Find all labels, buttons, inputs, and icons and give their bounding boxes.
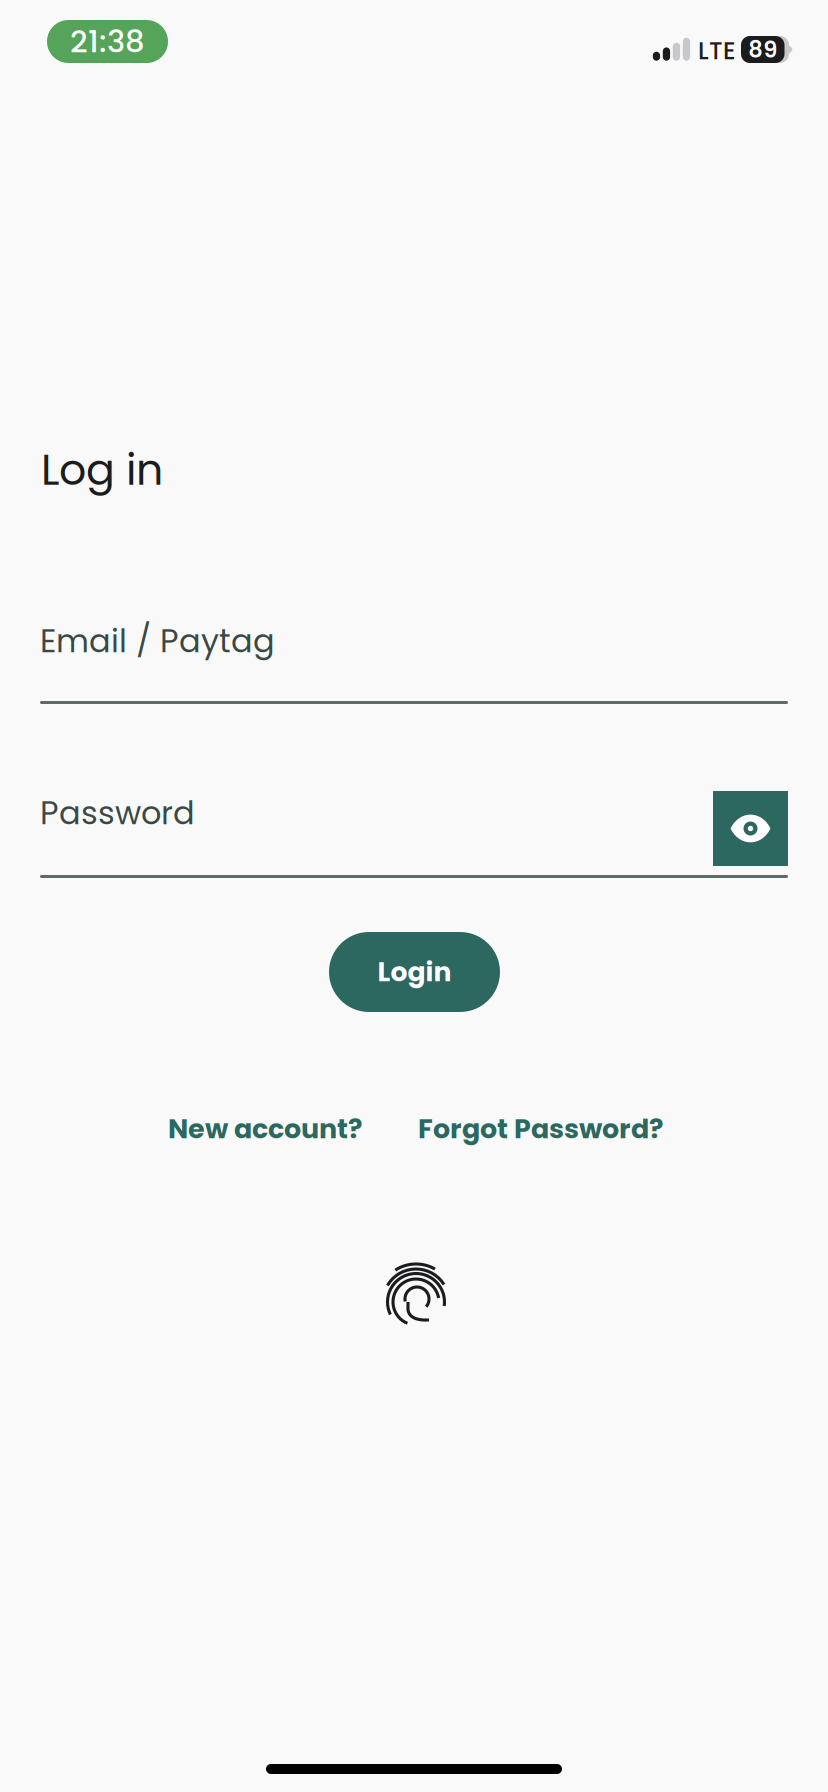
staticText: Login: [377, 953, 451, 991]
staticText: Password: [40, 791, 195, 835]
staticText: 89: [748, 34, 777, 65]
staticText: 21:38: [70, 20, 145, 63]
button[interactable]: Log in with fingerprint: [384, 1258, 446, 1332]
staticText: Forgot Password?: [418, 1110, 663, 1148]
button[interactable]: Login: [329, 932, 500, 1012]
button[interactable]: Show password: [713, 791, 788, 866]
staticText: LTE: [698, 34, 736, 68]
staticText: Email / Paytag: [40, 619, 275, 663]
staticText: New account?: [168, 1110, 362, 1148]
button[interactable]: Forgot Password?: [418, 1110, 663, 1148]
staticText: Log in: [41, 440, 163, 500]
button[interactable]: Password: [40, 792, 788, 878]
button[interactable]: New account?: [168, 1110, 362, 1148]
button[interactable]: Email / Paytag: [40, 620, 788, 704]
